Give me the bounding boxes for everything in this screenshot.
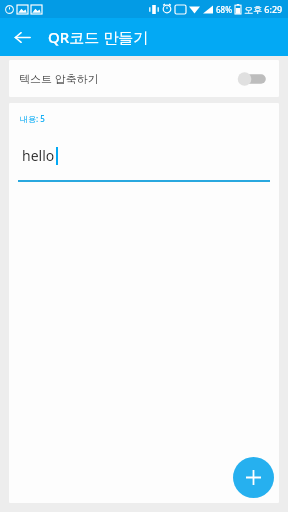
button[interactable]: Add (233, 457, 274, 498)
staticText: 텍스트 압축하기 (19, 71, 99, 86)
button[interactable]: Back (8, 23, 36, 51)
staticText: 68% (216, 4, 232, 15)
staticText: 내용: 5 (20, 113, 45, 124)
staticText: 오후 6:29 (244, 3, 283, 15)
button[interactable]: hello (22, 146, 279, 165)
button[interactable]: 텍스트 압축하기 (9, 60, 279, 97)
staticText: hello (22, 146, 55, 165)
staticText: QR코드 만들기 (48, 27, 149, 47)
